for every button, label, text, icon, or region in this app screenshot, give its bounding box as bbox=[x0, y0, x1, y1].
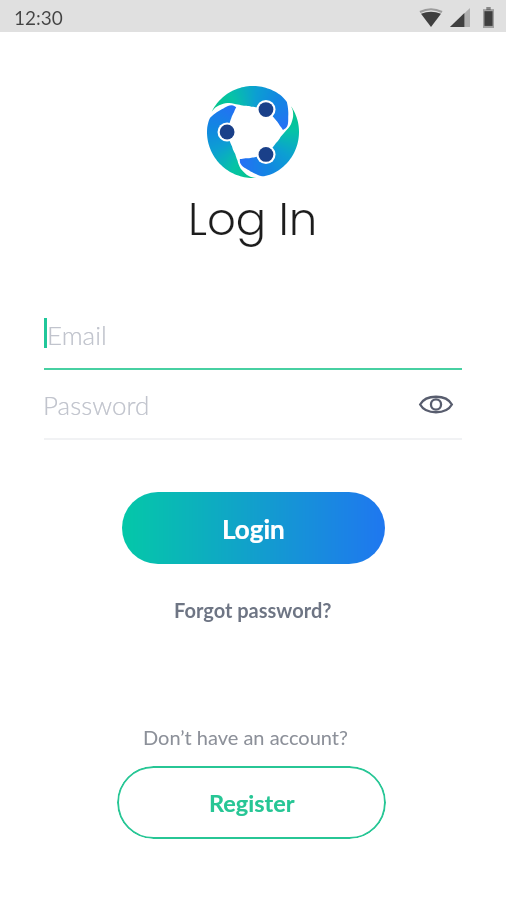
button[interactable]: Forgot password? bbox=[164, 593, 342, 627]
button[interactable]: Email bbox=[44, 318, 462, 370]
staticText: 12:30 bbox=[14, 6, 63, 29]
button[interactable]: Register bbox=[117, 766, 386, 839]
button[interactable]: Password bbox=[44, 388, 462, 440]
staticText: Register bbox=[209, 789, 295, 817]
button[interactable]: Show password bbox=[412, 382, 456, 426]
staticText: Forgot password? bbox=[174, 598, 332, 622]
staticText: Login bbox=[222, 513, 285, 544]
button[interactable]: Login bbox=[122, 492, 385, 564]
staticText: Don’t have an account? bbox=[143, 725, 348, 749]
staticText: Email bbox=[47, 319, 107, 350]
staticText: Password bbox=[43, 389, 150, 420]
staticText: Log In bbox=[188, 188, 318, 251]
